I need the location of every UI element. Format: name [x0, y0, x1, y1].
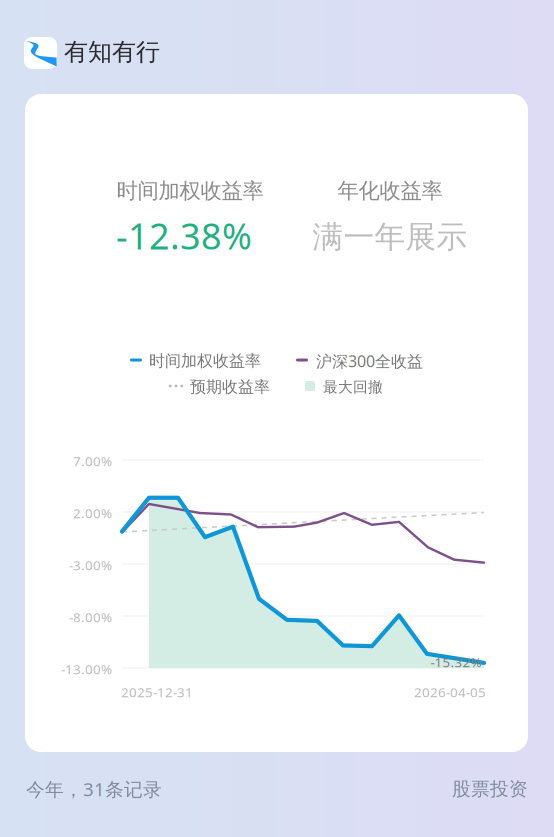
- staticText: 有知有行: [64, 37, 160, 67]
- staticText: 2025-12-31: [121, 683, 193, 701]
- staticText: 满一年展示: [312, 218, 467, 256]
- staticText: 今年，31条记录: [26, 777, 162, 801]
- staticText: 年化收益率: [337, 178, 442, 204]
- staticText: 2.00%: [73, 504, 112, 522]
- staticText: 最大回撤: [323, 378, 383, 396]
- staticText: -3.00%: [69, 556, 112, 574]
- staticText: 2026-04-05: [414, 683, 486, 701]
- staticText: 7.00%: [73, 452, 112, 470]
- staticText: 股票投资: [452, 777, 528, 800]
- staticText: -8.00%: [69, 608, 112, 626]
- staticText: 时间加权收益率: [116, 178, 263, 204]
- staticText: -13.00%: [61, 660, 112, 678]
- staticText: 沪深300全收益: [316, 350, 423, 372]
- staticText: -15.32%: [430, 653, 481, 671]
- staticText: 预期收益率: [190, 377, 270, 397]
- staticText: -12.38%: [116, 212, 252, 259]
- staticText: 时间加权收益率: [149, 351, 261, 371]
